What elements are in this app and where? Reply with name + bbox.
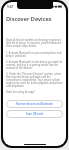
- button[interactable]: Receive devices via Bluetooth: [6, 100, 63, 108]
- staticText: Scan QR code: [26, 112, 44, 116]
- staticText: Have fun using the app!: [6, 90, 35, 93]
- staticText: 9:41: [7, 5, 14, 9]
- button[interactable]: Scan QR code: [6, 110, 63, 118]
- staticText: Discover Devices: [6, 15, 52, 23]
- staticText: Receive devices via Bluetooth: [16, 102, 53, 106]
- staticText: 3. Under the "Discover Devices" section,…: [6, 72, 63, 87]
- staticText: 2. Activate Bluetooth on the device you …: [6, 60, 63, 69]
- staticText: State-of-the-art wireless technology req…: [6, 38, 63, 47]
- staticText: 1. Activate Bluetooth on your smartphone…: [6, 51, 63, 57]
